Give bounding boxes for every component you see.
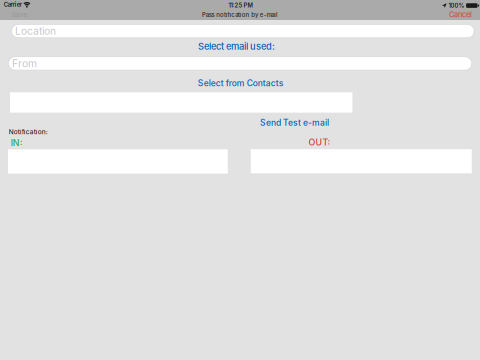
button[interactable]: Location	[12, 24, 474, 38]
staticText: Location	[15, 25, 56, 37]
button[interactable]	[8, 149, 228, 174]
button[interactable]: Send Test e-mail	[260, 117, 329, 128]
staticText: Pass notification by e-mail	[202, 11, 278, 18]
button[interactable]: Select from Contacts	[198, 78, 284, 88]
staticText: IN:	[11, 137, 23, 148]
staticText: 11:25 PM	[228, 2, 252, 9]
button[interactable]: From	[8, 57, 472, 70]
button[interactable]: Save	[12, 9, 44, 21]
staticText: Carrier	[4, 1, 22, 8]
staticText: Send Test e-mail	[260, 117, 329, 128]
button[interactable]: Select email used:	[198, 41, 275, 52]
button[interactable]: Cancel	[442, 9, 472, 21]
staticText: Select from Contacts	[198, 78, 284, 88]
staticText: 100%	[448, 2, 464, 9]
staticText: Save	[12, 11, 28, 18]
staticText: Select email used:	[198, 41, 275, 52]
staticText: Cancel	[449, 10, 472, 19]
staticText: OUT:	[308, 137, 330, 147]
staticText: From	[12, 57, 37, 70]
staticText: Notification:	[9, 128, 48, 136]
